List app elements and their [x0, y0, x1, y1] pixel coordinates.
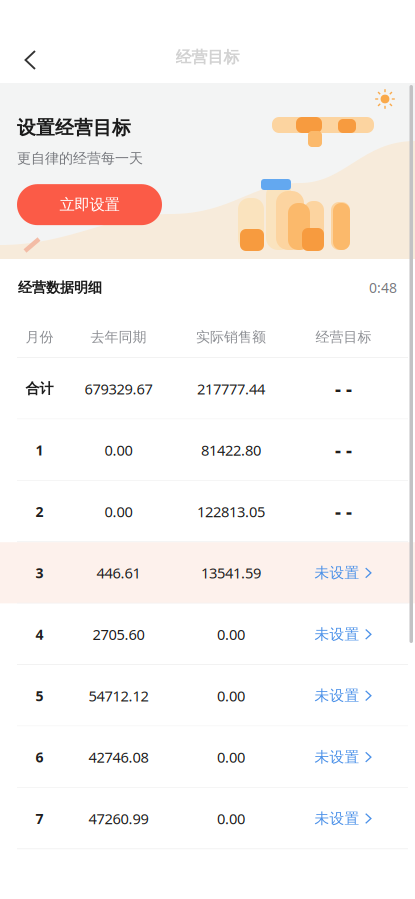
- staticText: 经营数据明细: [18, 279, 102, 296]
- staticText: 81422.80: [201, 440, 261, 460]
- button[interactable]: 合计: [0, 358, 415, 419]
- staticText: - -: [335, 437, 352, 463]
- staticText: 0:48: [369, 278, 397, 297]
- button[interactable]: 3: [0, 542, 415, 604]
- staticText: 更自律的经营每一天: [17, 149, 143, 167]
- staticText: 未设置: [314, 748, 359, 766]
- staticText: 4: [35, 625, 43, 644]
- staticText: 1: [35, 441, 43, 460]
- staticText: 42746.08: [88, 747, 148, 767]
- button[interactable]: 5: [0, 665, 415, 726]
- staticText: 未设置: [314, 809, 359, 828]
- staticText: 122813.05: [197, 501, 265, 521]
- staticText: 0.00: [217, 808, 245, 828]
- staticText: 0.00: [104, 501, 132, 521]
- staticText: 合计: [25, 380, 53, 397]
- staticText: 未设置: [314, 686, 359, 705]
- staticText: 0.00: [217, 686, 245, 706]
- staticText: 立即设置: [59, 195, 119, 214]
- staticText: 0.00: [104, 440, 132, 460]
- staticText: 47260.99: [88, 808, 148, 828]
- button[interactable]: 6: [0, 726, 415, 788]
- staticText: 217777.44: [197, 379, 265, 399]
- staticText: 经营目标: [175, 47, 239, 67]
- staticText: 月份: [25, 328, 53, 346]
- staticText: 3: [35, 563, 43, 582]
- staticText: 未设置: [314, 625, 359, 644]
- button[interactable]: 2: [0, 481, 415, 542]
- staticText: 13541.59: [201, 563, 261, 583]
- staticText: 679329.67: [84, 379, 152, 399]
- staticText: 0.00: [217, 624, 245, 644]
- staticText: 2: [35, 502, 43, 521]
- staticText: 446.61: [96, 563, 140, 583]
- staticText: 去年同期: [90, 328, 146, 346]
- staticText: - -: [335, 499, 352, 524]
- staticText: 0.00: [217, 747, 245, 767]
- staticText: - -: [335, 376, 352, 401]
- button[interactable]: 7: [0, 788, 415, 849]
- staticText: 2705.60: [92, 624, 144, 644]
- button[interactable]: 4: [0, 604, 415, 665]
- staticText: 经营目标: [315, 328, 371, 346]
- staticText: 未设置: [314, 564, 359, 582]
- button[interactable]: 1: [0, 419, 415, 481]
- staticText: 7: [35, 809, 43, 828]
- button[interactable]: Back: [8, 38, 52, 82]
- button[interactable]: 立即设置: [17, 184, 162, 225]
- staticText: 实际销售额: [196, 328, 266, 346]
- staticText: 6: [35, 748, 43, 767]
- staticText: 54712.12: [88, 686, 148, 706]
- staticText: 5: [35, 686, 43, 705]
- staticText: 设置经营目标: [17, 116, 131, 139]
